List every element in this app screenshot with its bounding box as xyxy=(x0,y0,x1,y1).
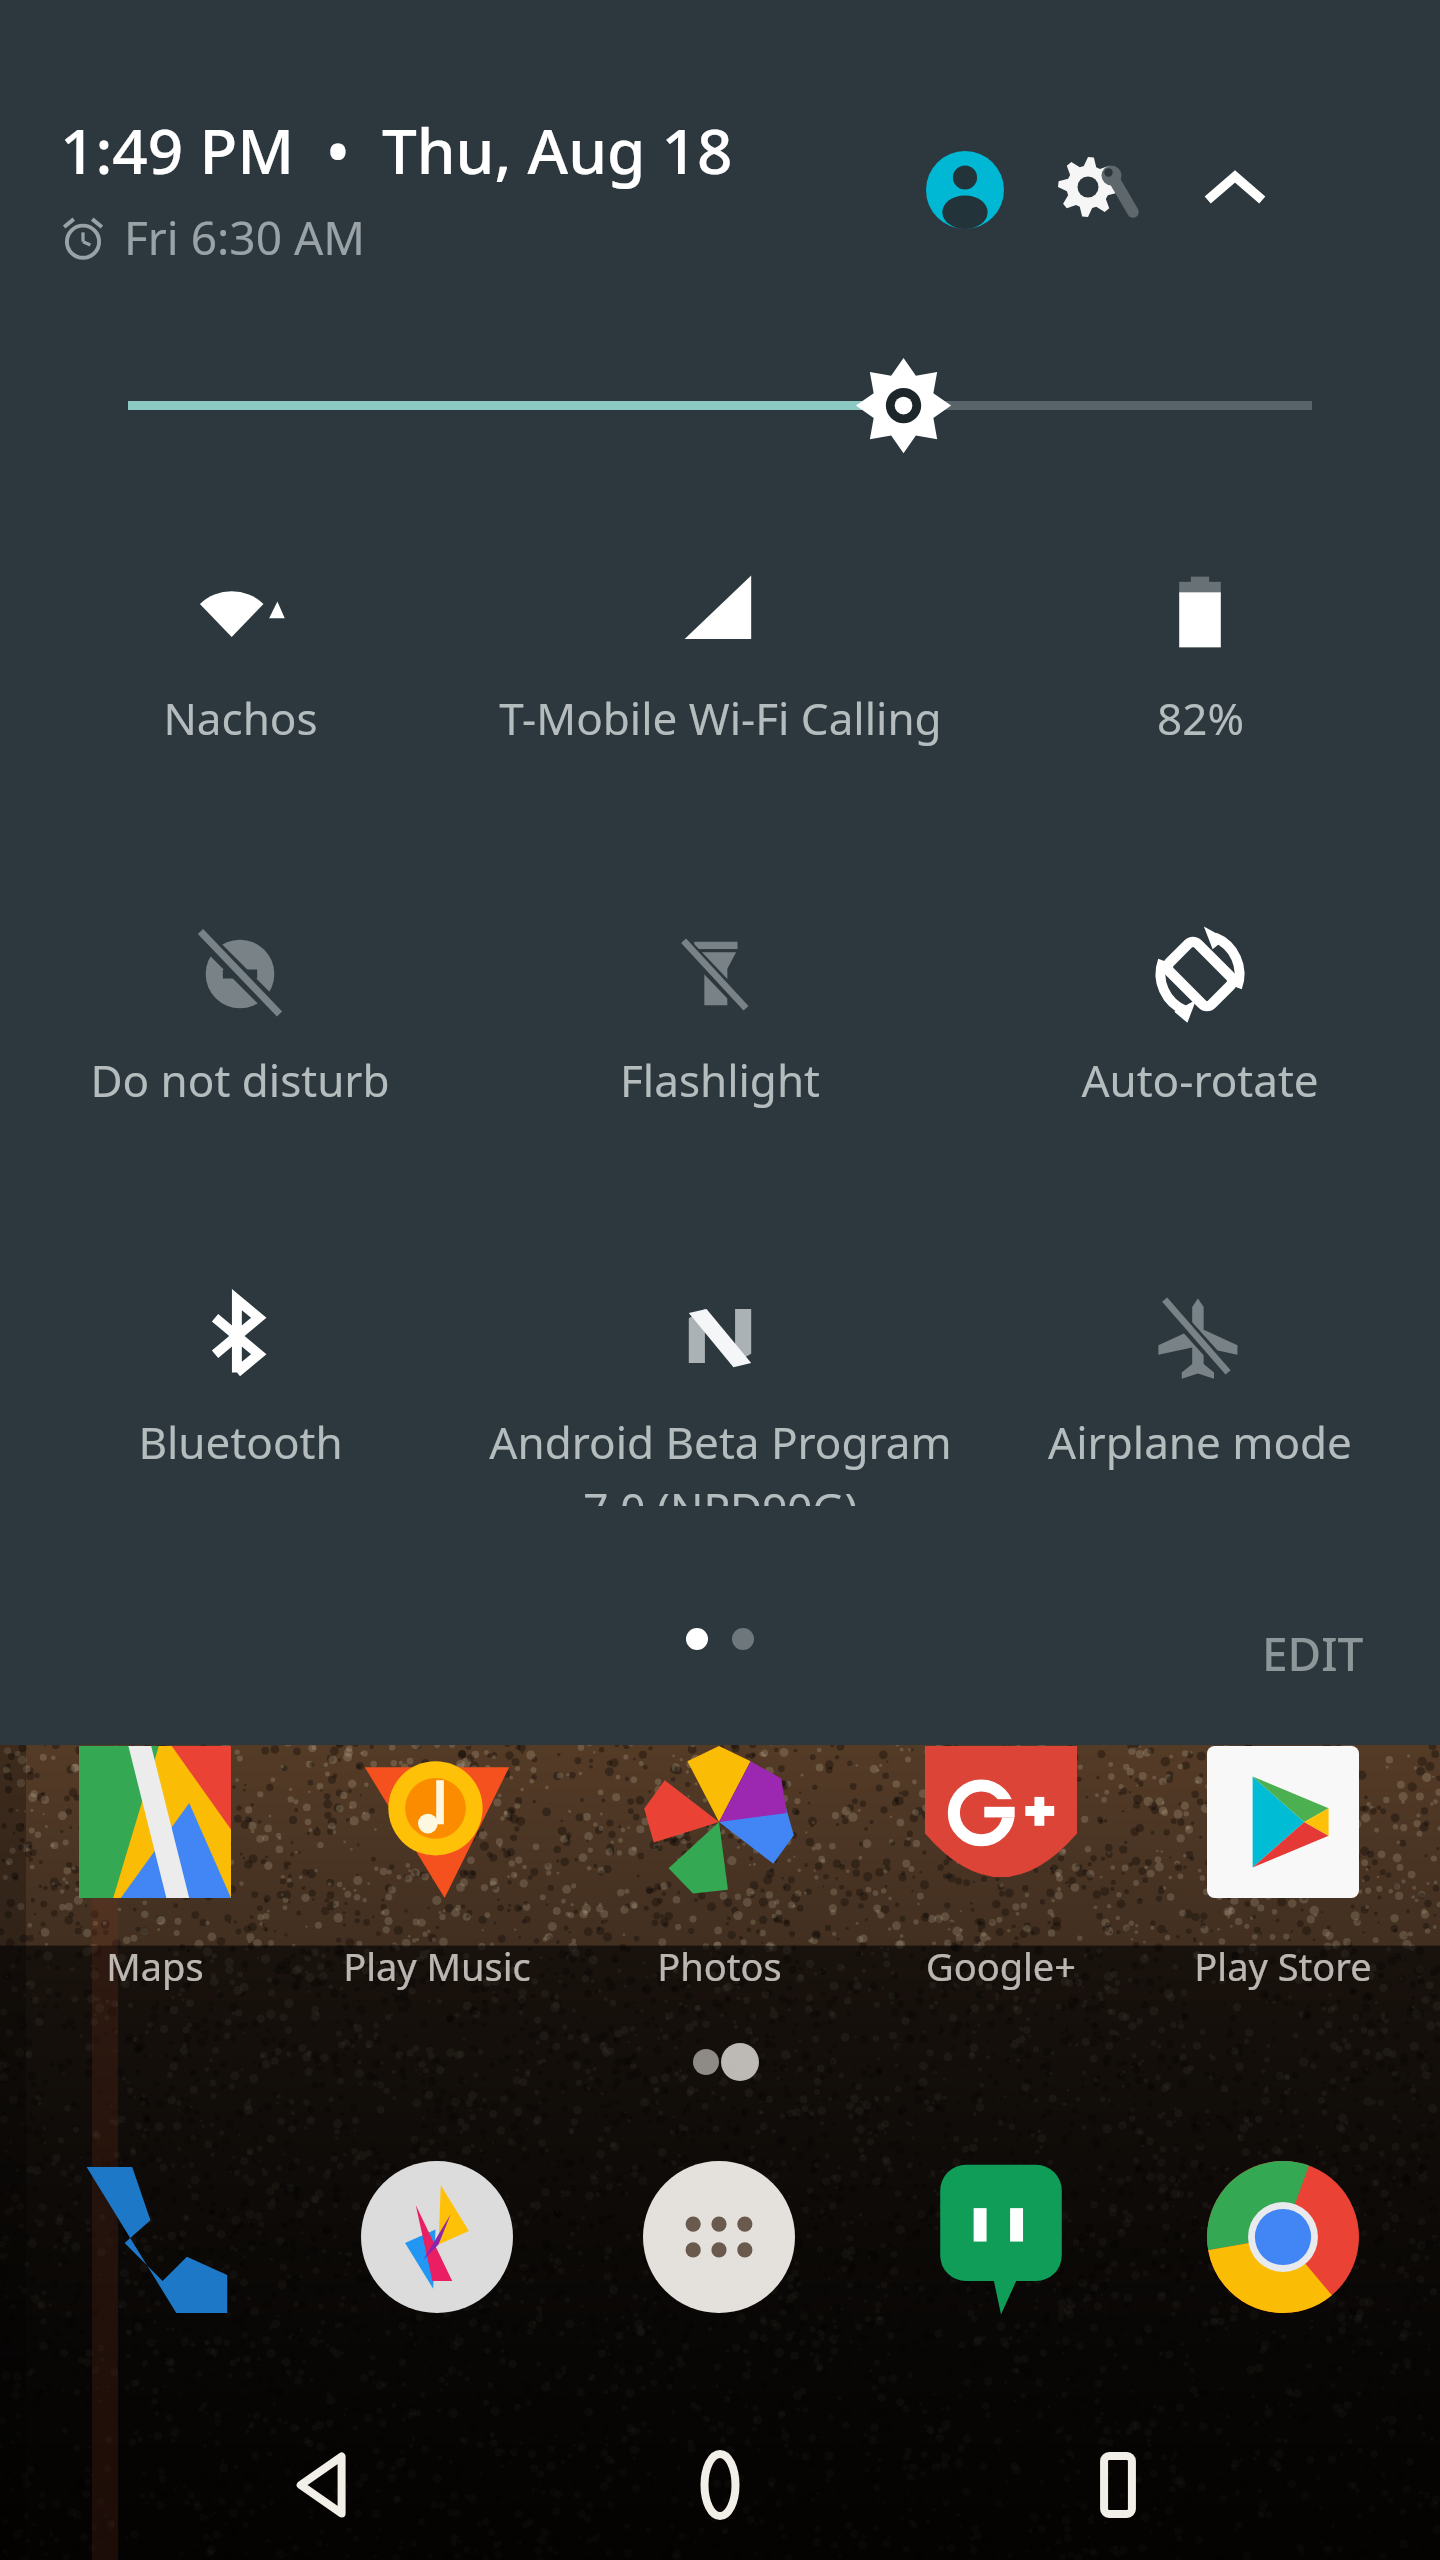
button[interactable]: Do not disturb xyxy=(0,922,480,1144)
button[interactable]: Auto-rotate xyxy=(960,922,1440,1144)
staticText: Play Music xyxy=(343,1940,531,1992)
staticText: 82% xyxy=(1157,688,1244,748)
button[interactable]: Google+ xyxy=(861,1940,1141,1992)
button[interactable]: User profile xyxy=(900,125,1030,255)
button[interactable]: Photos xyxy=(579,1940,859,1992)
staticText: Auto-rotate xyxy=(1081,1050,1319,1110)
button[interactable]: Collapse panel xyxy=(1170,125,1300,255)
staticText: Google+ xyxy=(926,1940,1076,1992)
staticText: T-Mobile Wi-Fi Calling xyxy=(499,688,942,748)
button[interactable]: Airplane mode xyxy=(960,1284,1440,1506)
button[interactable]: T-Mobile Wi-Fi Calling xyxy=(480,560,960,782)
button[interactable]: Nachos xyxy=(0,560,480,782)
button[interactable]: 82% xyxy=(960,560,1440,782)
staticText: Photos xyxy=(657,1940,782,1992)
staticText: Play Store xyxy=(1194,1940,1372,1992)
staticText: EDIT xyxy=(1262,1622,1364,1685)
button[interactable]: Recent apps xyxy=(1043,2410,1193,2560)
staticText: Do not disturb xyxy=(90,1050,390,1110)
button[interactable]: Back xyxy=(248,2410,398,2560)
button[interactable]: Android Beta Program xyxy=(480,1284,960,1506)
button[interactable]: Play Store xyxy=(1143,1940,1423,1992)
button[interactable]: EDIT xyxy=(1246,1606,1380,1701)
button[interactable]: Settings xyxy=(1030,120,1170,260)
staticText: 1:49 PM • Thu, Aug 18 xyxy=(60,108,733,192)
button[interactable]: Brightness xyxy=(0,330,1440,470)
button[interactable]: Play Music xyxy=(297,1940,577,1992)
staticText: 7.0 (NPD90G) xyxy=(583,1478,858,1506)
staticText: Nachos xyxy=(163,688,318,748)
button[interactable]: Bluetooth xyxy=(0,1284,480,1506)
staticText: Fri 6:30 AM xyxy=(124,206,366,269)
staticText: Airplane mode xyxy=(1048,1412,1352,1472)
button[interactable]: Home xyxy=(645,2410,795,2560)
staticText: Flashlight xyxy=(620,1050,820,1110)
button[interactable]: Flashlight xyxy=(480,922,960,1144)
button[interactable]: Maps xyxy=(15,1940,295,1992)
staticText: Bluetooth xyxy=(138,1412,343,1472)
staticText: Maps xyxy=(106,1940,204,1992)
staticText: Android Beta Program xyxy=(489,1412,952,1472)
